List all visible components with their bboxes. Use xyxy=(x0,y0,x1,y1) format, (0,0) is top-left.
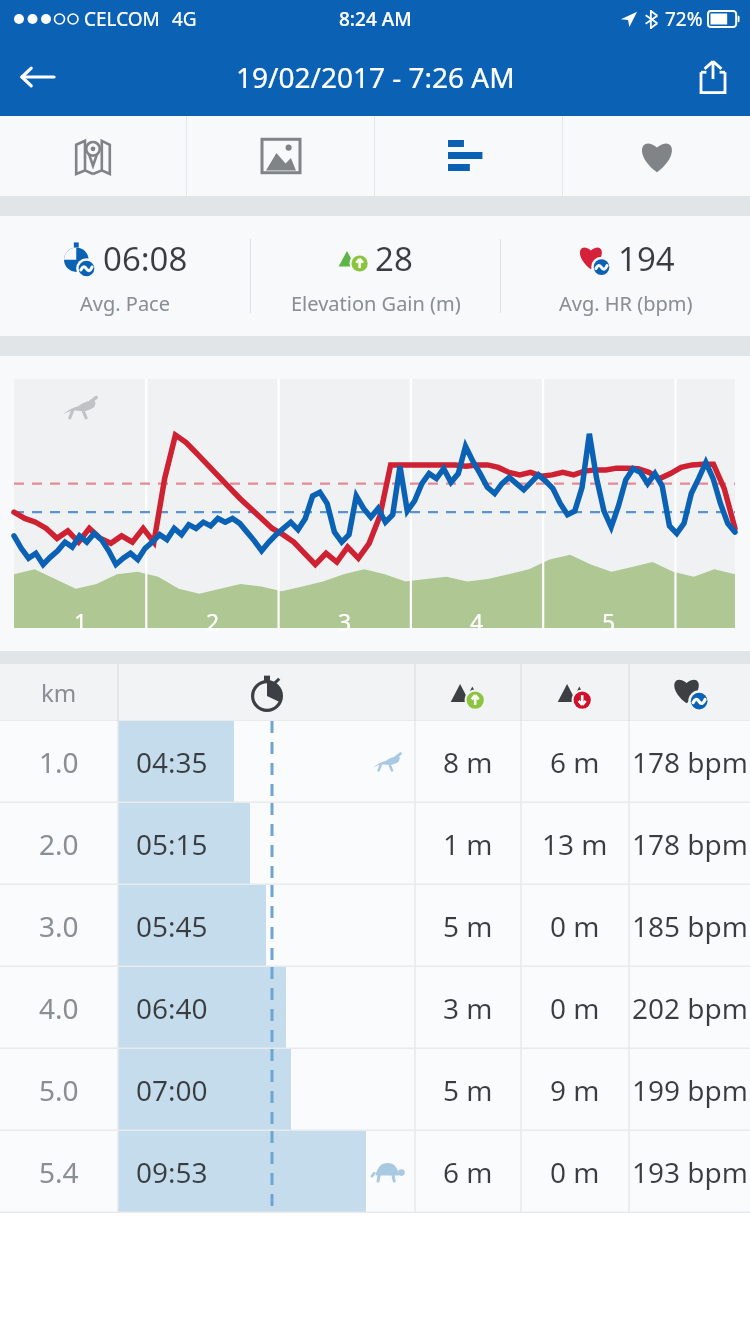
staticText: 07:00 xyxy=(136,1071,208,1109)
staticText: 6 m xyxy=(550,743,600,781)
button[interactable]: Heart rate xyxy=(563,116,750,196)
staticText: 09:53 xyxy=(136,1153,208,1191)
staticText: 72% xyxy=(665,6,703,32)
staticText: 9 m xyxy=(550,1071,600,1109)
staticText: 06:40 xyxy=(136,989,208,1027)
staticText: 05:15 xyxy=(136,825,208,863)
staticText: Elevation Gain (m) xyxy=(291,290,461,317)
staticText: 1 m xyxy=(443,825,493,863)
staticText: 8 m xyxy=(443,743,493,781)
staticText: 06:08 xyxy=(103,236,188,281)
staticText: 178 bpm xyxy=(632,825,748,863)
staticText: 178 bpm xyxy=(632,743,748,781)
staticText: 5.4 xyxy=(39,1153,79,1191)
button[interactable]: Photos xyxy=(187,116,374,196)
staticText: 0 m xyxy=(550,989,600,1027)
staticText: 4.0 xyxy=(39,989,79,1027)
staticText: km xyxy=(41,676,77,709)
button[interactable] xyxy=(0,803,750,885)
staticText: 4 xyxy=(470,606,484,637)
staticText: 185 bpm xyxy=(632,907,748,945)
staticText: 3 m xyxy=(443,989,493,1027)
staticText: 8:24 AM xyxy=(339,6,412,32)
staticText: 19/02/2017 - 7:26 AM xyxy=(236,58,515,96)
button[interactable]: Charts xyxy=(375,116,562,196)
staticText: 0 m xyxy=(550,1153,600,1191)
staticText: 0 m xyxy=(550,907,600,945)
button[interactable] xyxy=(0,1049,750,1131)
staticText: 193 bpm xyxy=(632,1153,748,1191)
staticText: 1.0 xyxy=(39,743,79,781)
button[interactable] xyxy=(0,885,750,967)
staticText: 199 bpm xyxy=(632,1071,748,1109)
staticText: 6 m xyxy=(443,1153,493,1191)
button[interactable]: Back xyxy=(0,40,74,114)
button[interactable] xyxy=(0,1131,750,1213)
staticText: Avg. HR (bpm) xyxy=(559,290,693,317)
staticText: 3 xyxy=(338,606,352,637)
staticText: 5 xyxy=(602,606,616,637)
staticText: 5.0 xyxy=(39,1071,79,1109)
staticText: 4G xyxy=(172,6,197,32)
button[interactable]: 06:08 xyxy=(0,216,250,336)
staticText: 05:45 xyxy=(136,907,208,945)
staticText: 04:35 xyxy=(136,743,208,781)
button[interactable]: 28 xyxy=(251,216,500,336)
staticText: 2.0 xyxy=(39,825,79,863)
staticText: 2 xyxy=(206,606,220,637)
staticText: 3.0 xyxy=(39,907,79,945)
staticText: 202 bpm xyxy=(632,989,748,1027)
staticText: CELCOM xyxy=(84,6,160,32)
button[interactable] xyxy=(0,721,750,803)
staticText: 5 m xyxy=(443,907,493,945)
staticText: 1 xyxy=(74,606,88,637)
staticText: Avg. Pace xyxy=(80,290,170,317)
button[interactable]: Map xyxy=(0,116,186,196)
staticText: 5 m xyxy=(443,1071,493,1109)
staticText: 13 m xyxy=(542,825,608,863)
button[interactable]: Share xyxy=(676,40,750,114)
staticText: 28 xyxy=(375,236,413,281)
button[interactable]: 194 xyxy=(501,216,750,336)
button[interactable] xyxy=(0,967,750,1049)
staticText: 194 xyxy=(618,236,675,281)
